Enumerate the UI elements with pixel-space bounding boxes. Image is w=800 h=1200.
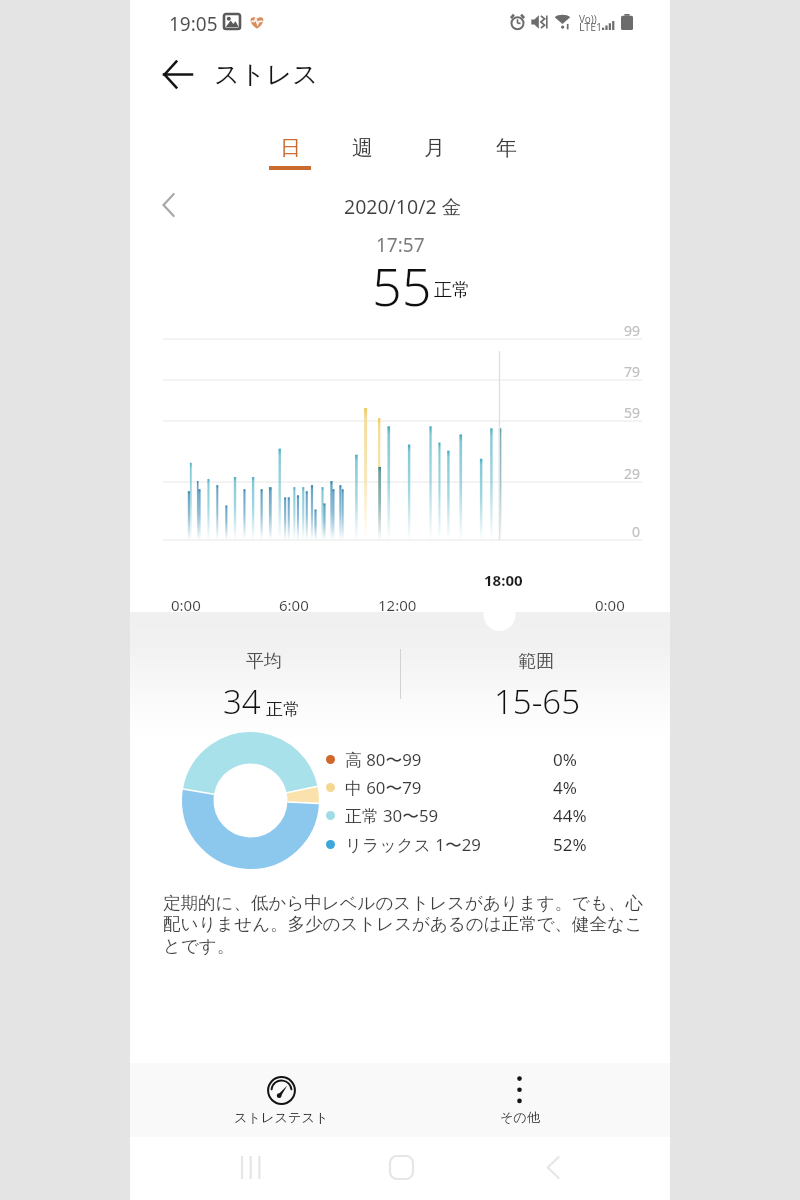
staticText: 正常 30〜59 bbox=[345, 804, 439, 827]
staticText: 0:00 bbox=[595, 595, 625, 615]
button[interactable]: ストレステスト bbox=[181, 1063, 381, 1137]
staticText: 34 bbox=[223, 679, 261, 724]
button[interactable]: 年 bbox=[470, 112, 542, 178]
staticText: 79 bbox=[624, 362, 641, 381]
staticText: 週 bbox=[352, 135, 373, 161]
staticText: リラックス 1〜29 bbox=[345, 833, 481, 856]
staticText: 44% bbox=[553, 804, 587, 827]
button[interactable]: Recents bbox=[191, 1137, 311, 1200]
staticText: 19:05 bbox=[169, 11, 218, 37]
staticText: 0:00 bbox=[171, 595, 201, 615]
staticText: 年 bbox=[496, 135, 517, 161]
staticText: 17:57 bbox=[376, 232, 425, 258]
staticText: 平均 bbox=[246, 650, 282, 673]
staticText: 55 bbox=[372, 250, 432, 321]
button[interactable]: Home bbox=[346, 1137, 456, 1200]
button[interactable]: 月 bbox=[398, 112, 470, 178]
button[interactable]: Back bbox=[149, 46, 205, 102]
button[interactable]: Previous day bbox=[146, 183, 190, 227]
staticText: 52% bbox=[553, 833, 587, 856]
staticText: 29 bbox=[624, 464, 641, 483]
staticText: LTE1 bbox=[579, 20, 602, 34]
staticText: 日 bbox=[280, 135, 301, 161]
staticText: 4% bbox=[553, 776, 577, 799]
staticText: その他 bbox=[500, 1109, 541, 1126]
staticText: 2020/10/2 金 bbox=[344, 193, 462, 220]
staticText: 中 60〜79 bbox=[345, 776, 422, 799]
staticText: 18:00 bbox=[484, 570, 523, 590]
staticText: 6:00 bbox=[279, 595, 309, 615]
staticText: 0% bbox=[553, 748, 577, 771]
staticText: 正常 bbox=[434, 279, 470, 302]
staticText: 定期的に、低から中レベルのストレスがあります。でも、心配いりません。多少のストレ… bbox=[163, 892, 645, 957]
staticText: 59 bbox=[624, 403, 641, 422]
staticText: 99 bbox=[624, 321, 641, 340]
staticText: 高 80〜99 bbox=[345, 748, 422, 771]
staticText: 月 bbox=[424, 135, 445, 161]
staticText: 0 bbox=[632, 522, 641, 541]
button[interactable]: 週 bbox=[326, 112, 398, 178]
staticText: ストレステスト bbox=[234, 1109, 329, 1126]
staticText: 15-65 bbox=[494, 679, 580, 724]
button[interactable]: その他 bbox=[420, 1063, 620, 1137]
button[interactable]: 日 bbox=[254, 112, 326, 178]
staticText: 12:00 bbox=[378, 595, 417, 615]
staticText: ストレス bbox=[214, 58, 319, 90]
staticText: 範囲 bbox=[518, 650, 554, 673]
staticText: Vo)) bbox=[579, 12, 597, 26]
staticText: 正常 bbox=[266, 699, 300, 720]
